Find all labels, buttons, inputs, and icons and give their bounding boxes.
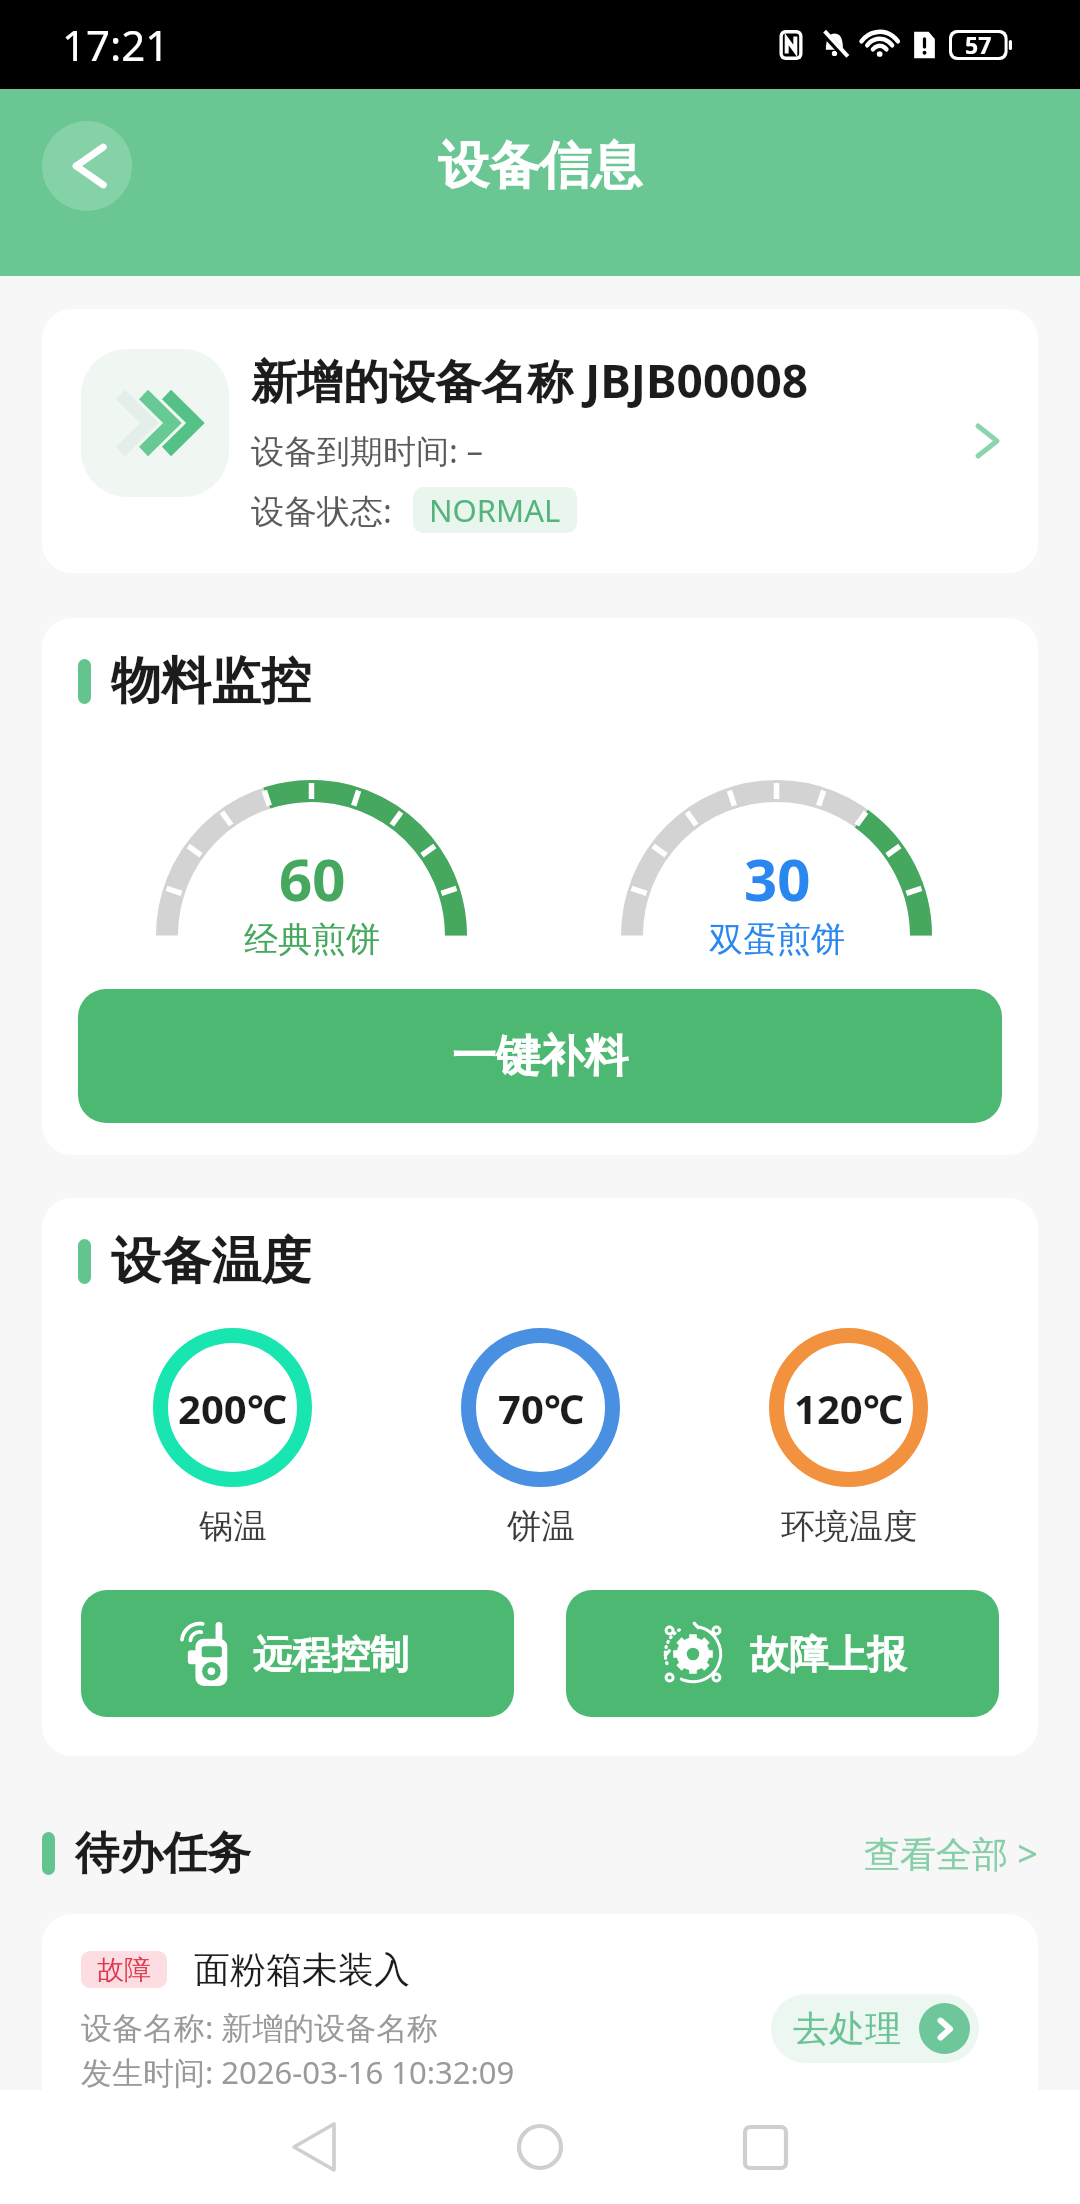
staticText: 发生时间: 2026-03-16 10:32:09 xyxy=(81,2051,515,2093)
staticText: 饼温 xyxy=(507,1505,575,1548)
staticText: 设备名称: 新增的设备名称 xyxy=(81,2006,439,2048)
staticText: 去处理 xyxy=(793,2006,901,2051)
staticText: 设备到期时间: – xyxy=(251,428,483,473)
staticText: 设备状态: xyxy=(251,488,401,533)
staticText: 17:21 xyxy=(62,16,170,73)
staticText: 故障上报 xyxy=(750,1630,906,1679)
button[interactable]: 去处理 xyxy=(771,1994,979,2063)
button[interactable]: Recents xyxy=(710,2092,820,2202)
button[interactable]: Back xyxy=(42,121,132,211)
button[interactable]: 故障 xyxy=(42,1914,1038,2174)
staticText: 60 xyxy=(279,839,346,918)
staticText: 远程控制 xyxy=(253,1630,409,1679)
staticText: 57 xyxy=(965,29,992,60)
staticText: 200℃ xyxy=(178,1381,287,1435)
staticText: 30 xyxy=(744,839,811,918)
button[interactable]: 一键补料 xyxy=(78,989,1002,1123)
button[interactable]: 远程控制 xyxy=(81,1590,514,1717)
staticText: 70℃ xyxy=(498,1381,584,1435)
staticText: 环境温度 xyxy=(781,1505,917,1548)
staticText: 故障 xyxy=(97,1953,151,1987)
button[interactable]: Home xyxy=(485,2092,595,2202)
staticText: NORMAL xyxy=(429,489,561,531)
staticText: 设备温度 xyxy=(111,1230,311,1293)
staticText: 设备信息 xyxy=(438,134,642,198)
button[interactable]: 故障上报 xyxy=(566,1590,999,1717)
staticText: 经典煎饼 xyxy=(244,918,380,961)
button[interactable]: Back xyxy=(259,2092,369,2202)
button[interactable]: 查看全部 > xyxy=(864,1829,1038,1878)
staticText: 120℃ xyxy=(794,1381,903,1435)
staticText: 新增的设备名称 JBJB00008 xyxy=(251,349,809,412)
staticText: 物料监控 xyxy=(111,650,311,713)
staticText: 一键补料 xyxy=(452,1029,628,1084)
staticText: 双蛋煎饼 xyxy=(709,918,845,961)
staticText: 待办任务 xyxy=(75,1826,251,1881)
staticText: 锅温 xyxy=(199,1505,267,1548)
staticText: 面粉箱未装入 xyxy=(194,1947,410,1992)
button[interactable]: 新增的设备名称 JBJB00008 xyxy=(42,309,1038,573)
staticText: 查看全部 > xyxy=(864,1829,1038,1878)
